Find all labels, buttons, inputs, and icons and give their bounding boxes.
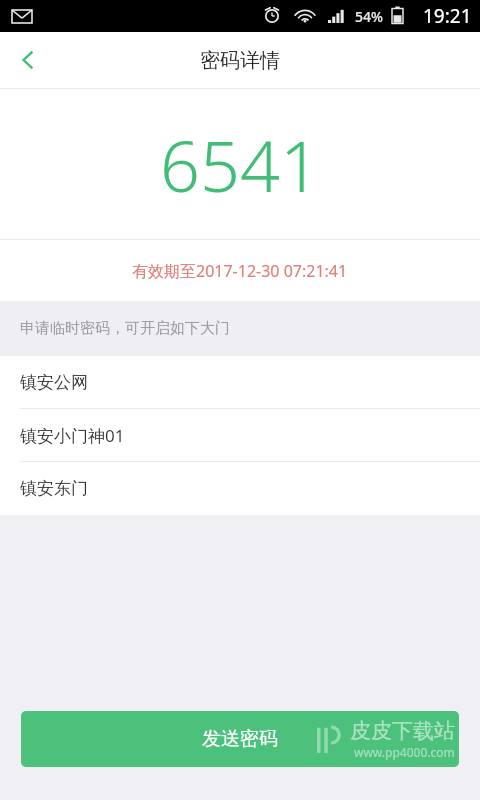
staticText: 镇安东门 <box>20 478 88 499</box>
button[interactable]: Back <box>0 32 56 88</box>
staticText: 19:21 <box>423 3 472 29</box>
staticText: 皮皮下载站 <box>350 718 455 744</box>
staticText: 发送密码 <box>202 727 278 751</box>
staticText: 6541 <box>160 117 320 212</box>
button[interactable]: 镇安公网 <box>0 356 480 409</box>
staticText: 密码详情 <box>200 48 280 73</box>
staticText: 54% <box>355 7 383 26</box>
button[interactable]: 发送密码 <box>21 711 459 767</box>
staticText: 镇安小门神01 <box>20 424 125 447</box>
staticText: 镇安公网 <box>20 372 88 393</box>
staticText: www.pp4000.com <box>354 744 455 760</box>
button[interactable]: 镇安小门神01 <box>0 409 480 462</box>
staticText: 申请临时密码，可开启如下大门 <box>20 319 230 338</box>
staticText: 有效期至2017-12-30 07:21:41 <box>132 260 348 282</box>
button[interactable]: 镇安东门 <box>0 462 480 515</box>
